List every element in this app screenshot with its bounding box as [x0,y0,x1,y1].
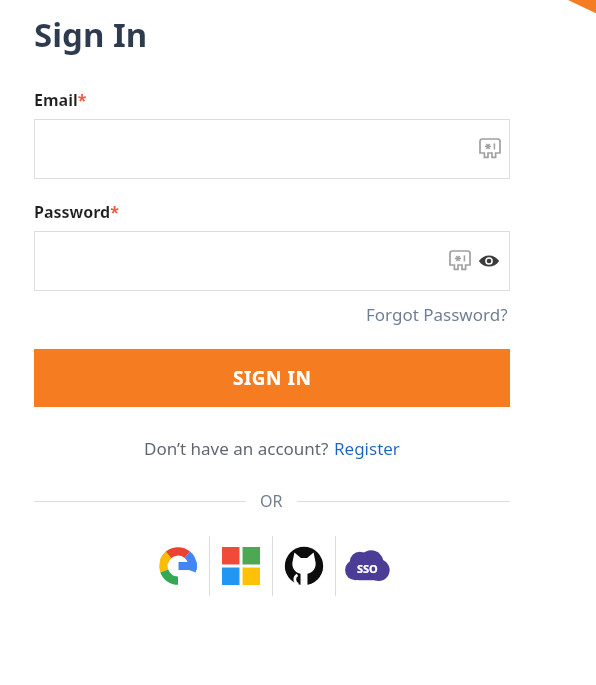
button[interactable]: Show password [478,250,500,272]
button[interactable]: Password manager [34,119,510,179]
button[interactable]: Sign in with GitHub [273,536,335,596]
button[interactable]: Register [333,435,401,462]
button[interactable]: SIGN IN [34,349,510,407]
staticText: OR [260,490,283,512]
button[interactable]: Sign in with Microsoft [210,536,272,596]
button[interactable]: Sign in with Google [147,536,209,596]
staticText: Password* [34,201,119,223]
button[interactable]: Password manager [480,139,500,159]
button[interactable]: Sign in with SSO [336,536,398,596]
staticText: SSO [357,561,378,576]
staticText: Sign In [34,12,148,57]
button[interactable]: Password manager [450,251,470,271]
staticText: Register [334,437,400,460]
button[interactable]: Forgot Password? [364,301,510,328]
staticText: Email* [34,89,87,111]
staticText: Don’t have an account? [144,437,333,460]
button[interactable]: Password manager [34,231,510,291]
staticText: SIGN IN [233,365,312,391]
staticText: Forgot Password? [366,303,508,326]
